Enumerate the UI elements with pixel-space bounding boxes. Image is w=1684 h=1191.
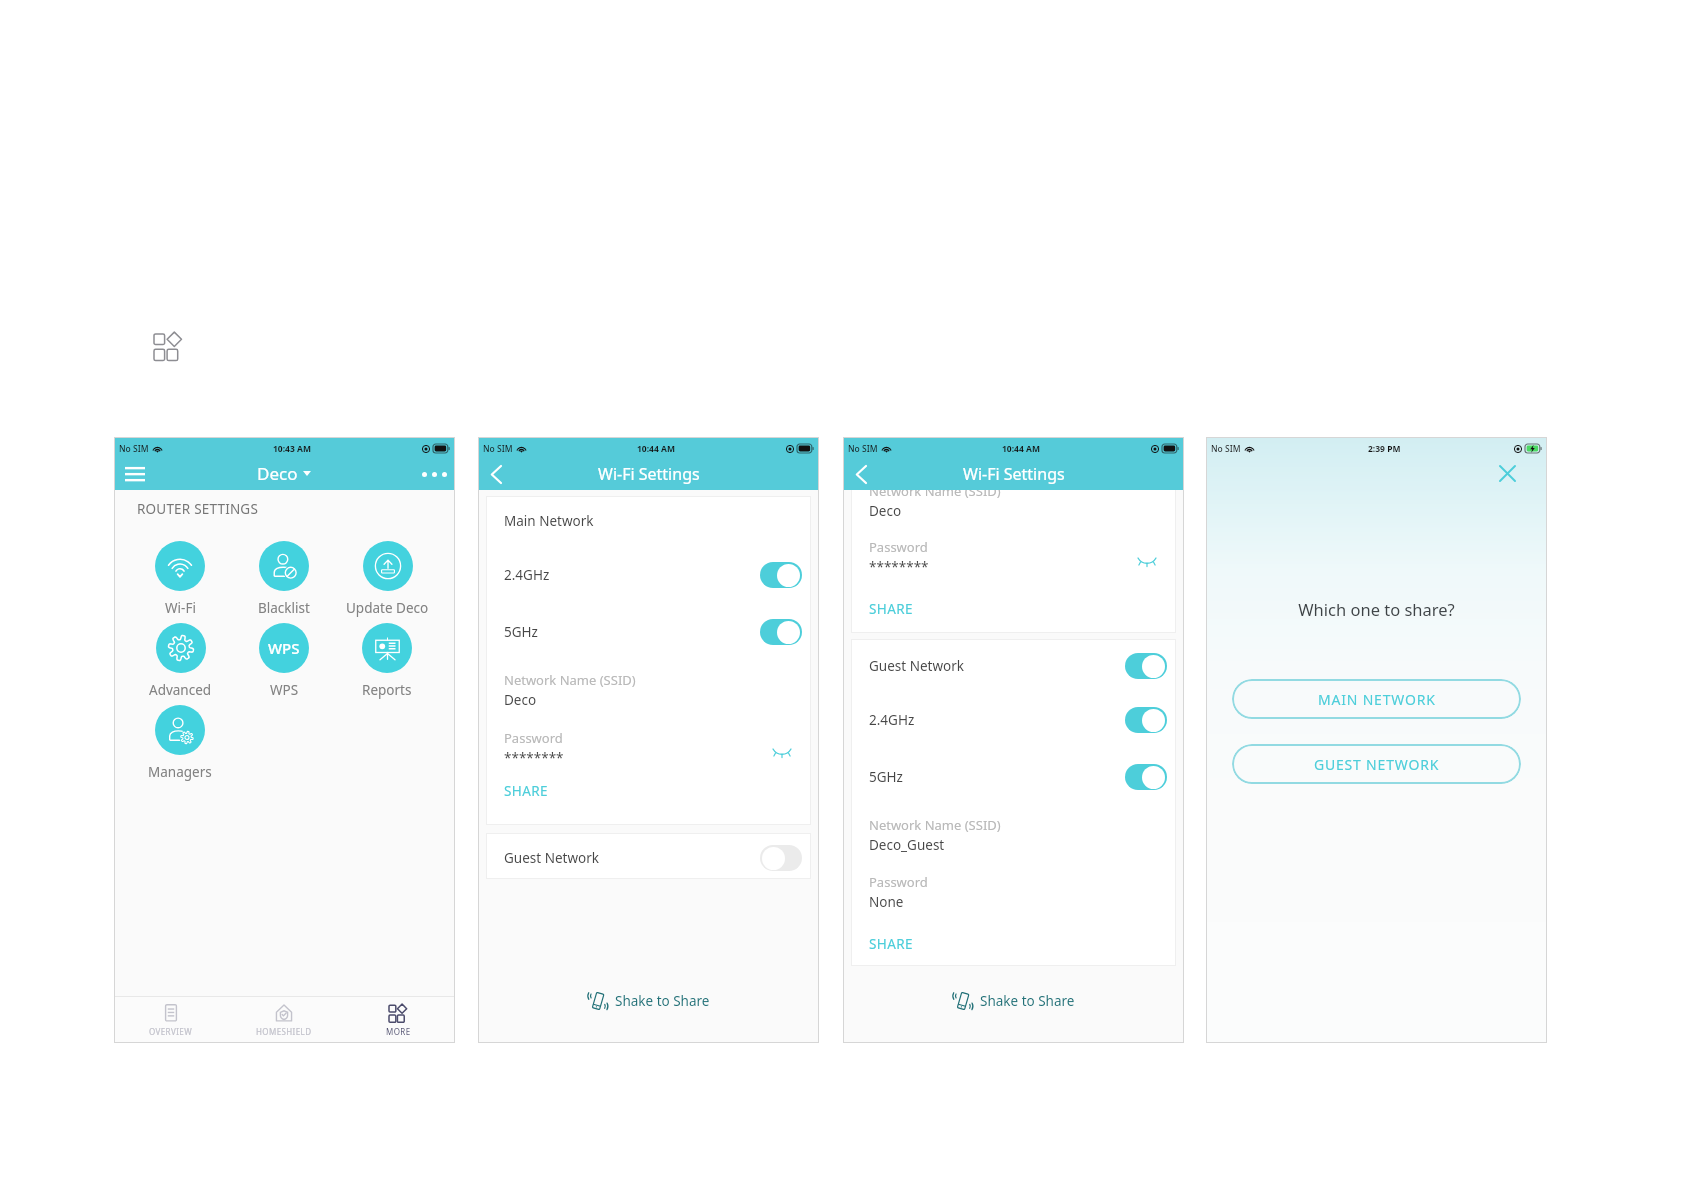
staticText: ********: [504, 749, 564, 767]
button[interactable]: On: [1125, 653, 1167, 679]
staticText: Network Name (SSID): [869, 482, 1001, 500]
button[interactable]: OVERVIEW: [114, 997, 227, 1043]
button[interactable]: Menu: [122, 461, 148, 487]
staticText: Password: [869, 873, 928, 891]
staticText: Reports: [362, 681, 412, 699]
staticText: Managers: [148, 763, 212, 781]
button[interactable]: Reports: [339, 623, 435, 705]
staticText: ROUTER SETTINGS: [137, 500, 259, 518]
staticText: Network Name (SSID): [504, 671, 636, 689]
button[interactable]: Shake to Share: [843, 985, 1184, 1017]
staticText: Main Network: [504, 512, 594, 530]
button[interactable]: Deco: [253, 458, 315, 489]
button[interactable]: On: [760, 562, 802, 588]
button[interactable]: Back: [848, 461, 874, 487]
staticText: Advanced: [149, 681, 212, 699]
button[interactable]: Close: [1494, 460, 1520, 486]
staticText: Guest Network: [869, 657, 964, 675]
staticText: Update Deco: [346, 599, 429, 617]
staticText: Which one to share?: [1298, 598, 1455, 620]
button[interactable]: GUEST NETWORK: [1232, 744, 1521, 784]
staticText: 2:39 PM: [1368, 443, 1401, 455]
staticText: Deco_Guest: [869, 836, 945, 854]
button[interactable]: SHARE: [504, 781, 548, 801]
button[interactable]: MORE: [341, 997, 455, 1043]
staticText: Wi-Fi: [165, 599, 196, 617]
staticText: 10:44 AM: [1002, 443, 1040, 455]
staticText: Shake to Share: [980, 992, 1075, 1010]
staticText: MAIN NETWORK: [1318, 690, 1436, 709]
button[interactable]: Advanced: [132, 623, 228, 705]
staticText: Guest Network: [504, 849, 599, 867]
staticText: OVERVIEW: [149, 1026, 192, 1037]
button[interactable]: SHARE: [869, 934, 913, 954]
button[interactable]: 5GHz: [504, 610, 802, 654]
staticText: 5GHz: [504, 623, 538, 641]
staticText: 2.4GHz: [869, 711, 915, 729]
staticText: Wi-Fi Settings: [598, 463, 700, 485]
staticText: No SIM: [483, 443, 513, 455]
staticText: No SIM: [119, 443, 149, 455]
button[interactable]: Guest Network: [504, 836, 802, 880]
button[interactable]: Update Deco: [339, 541, 435, 623]
button[interactable]: Shake to Share: [478, 985, 819, 1017]
button[interactable]: Off: [760, 845, 802, 871]
button[interactable]: Blacklist: [236, 541, 332, 623]
staticText: ********: [869, 558, 929, 576]
staticText: Blacklist: [258, 599, 310, 617]
staticText: Deco: [504, 691, 537, 709]
button[interactable]: 2.4GHz: [504, 553, 802, 597]
staticText: GUEST NETWORK: [1314, 755, 1440, 774]
staticText: 2.4GHz: [504, 566, 550, 584]
button[interactable]: WPS: [236, 623, 332, 705]
staticText: 5GHz: [869, 768, 903, 786]
staticText: Password: [504, 729, 563, 747]
staticText: WPS: [268, 638, 300, 658]
button[interactable]: On: [1125, 707, 1167, 733]
staticText: 10:44 AM: [637, 443, 675, 455]
button[interactable]: 5GHz: [869, 755, 1167, 799]
staticText: Deco: [869, 502, 902, 520]
staticText: No SIM: [1211, 443, 1241, 455]
staticText: Password: [869, 538, 928, 556]
button[interactable]: On: [760, 619, 802, 645]
button[interactable]: SHARE: [869, 599, 913, 619]
staticText: Deco: [257, 462, 298, 485]
staticText: 10:43 AM: [273, 443, 311, 455]
staticText: SHARE: [869, 935, 913, 953]
button[interactable]: More: [154, 332, 182, 360]
staticText: Wi-Fi Settings: [963, 463, 1065, 485]
button[interactable]: Guest Network: [869, 644, 1167, 688]
staticText: None: [869, 893, 904, 911]
button[interactable]: On: [1125, 764, 1167, 790]
staticText: SHARE: [504, 782, 548, 800]
staticText: WPS: [270, 681, 299, 699]
staticText: Network Name (SSID): [869, 816, 1001, 834]
button[interactable]: Show password: [1138, 557, 1156, 565]
button[interactable]: Wi-Fi: [132, 541, 228, 623]
staticText: HOMESHIELD: [256, 1026, 312, 1037]
button[interactable]: Back: [483, 461, 509, 487]
button[interactable]: HOMESHIELD: [227, 997, 341, 1043]
staticText: No SIM: [848, 443, 878, 455]
button[interactable]: More options: [421, 461, 447, 487]
button[interactable]: MAIN NETWORK: [1232, 679, 1521, 719]
staticText: SHARE: [869, 600, 913, 618]
staticText: MORE: [386, 1026, 411, 1037]
staticText: Shake to Share: [615, 992, 710, 1010]
button[interactable]: 2.4GHz: [869, 698, 1167, 742]
button[interactable]: Managers: [132, 705, 228, 787]
button[interactable]: Show password: [773, 748, 791, 756]
